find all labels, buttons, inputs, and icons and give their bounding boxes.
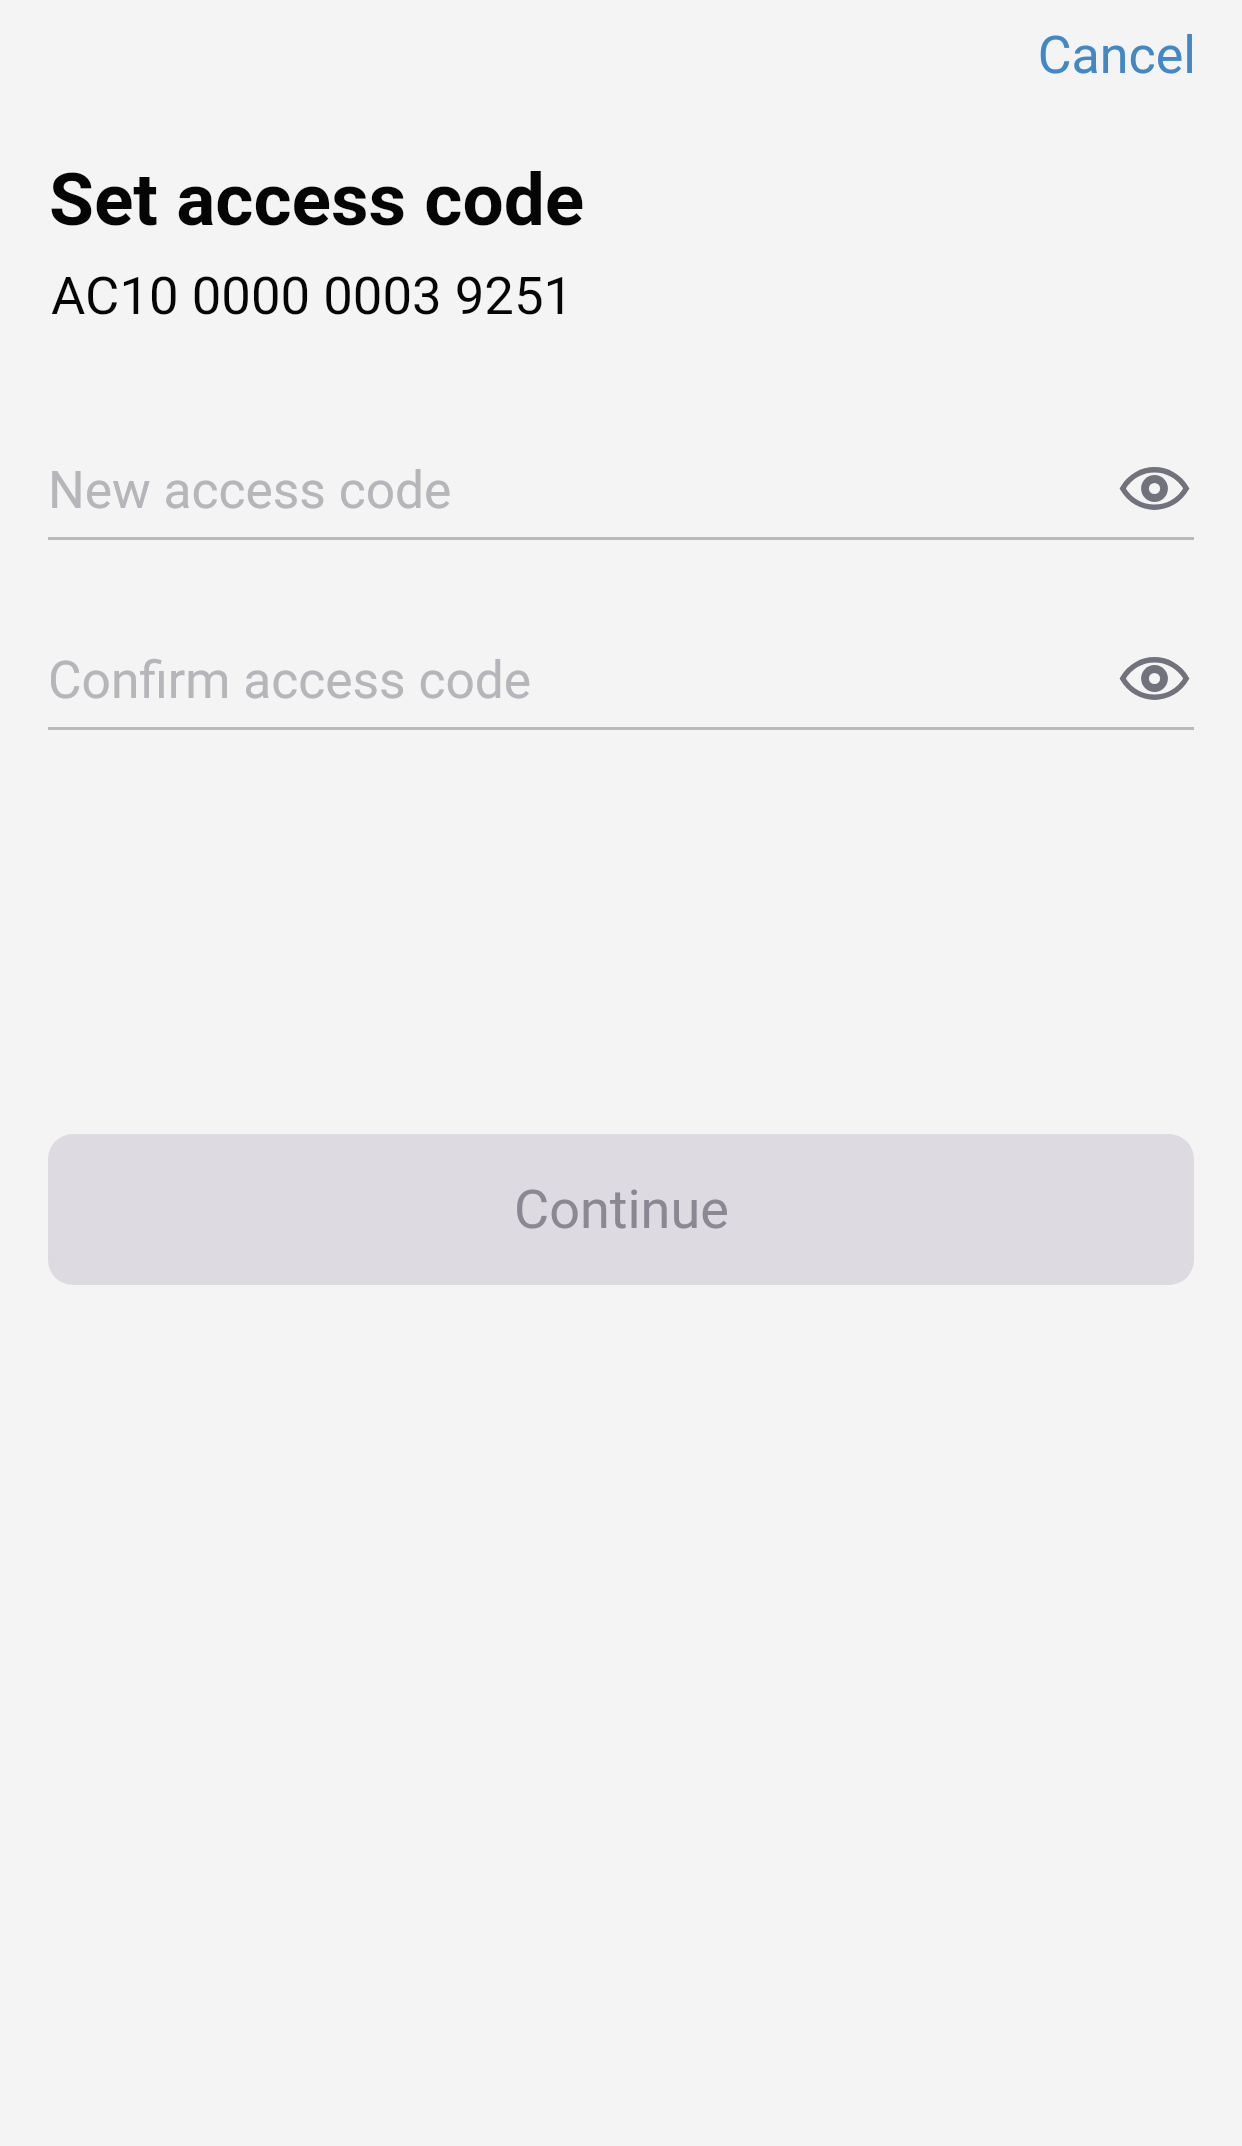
button[interactable]: Show Confirm access code	[1104, 638, 1204, 718]
staticText: AC10 0000 0003 9251	[51, 265, 574, 327]
button[interactable]: Show New access code	[1104, 448, 1204, 528]
staticText: Continue	[514, 1178, 729, 1241]
button[interactable]: New access code	[48, 452, 1098, 544]
staticText: Confirm access code	[48, 650, 532, 710]
staticText: Cancel	[1037, 25, 1196, 86]
staticText: New access code	[48, 460, 452, 520]
button[interactable]: Confirm access code	[48, 642, 1098, 734]
staticText: Set access code	[49, 157, 585, 243]
button[interactable]: Continue	[48, 1134, 1194, 1285]
button[interactable]: Cancel	[976, 0, 1216, 106]
